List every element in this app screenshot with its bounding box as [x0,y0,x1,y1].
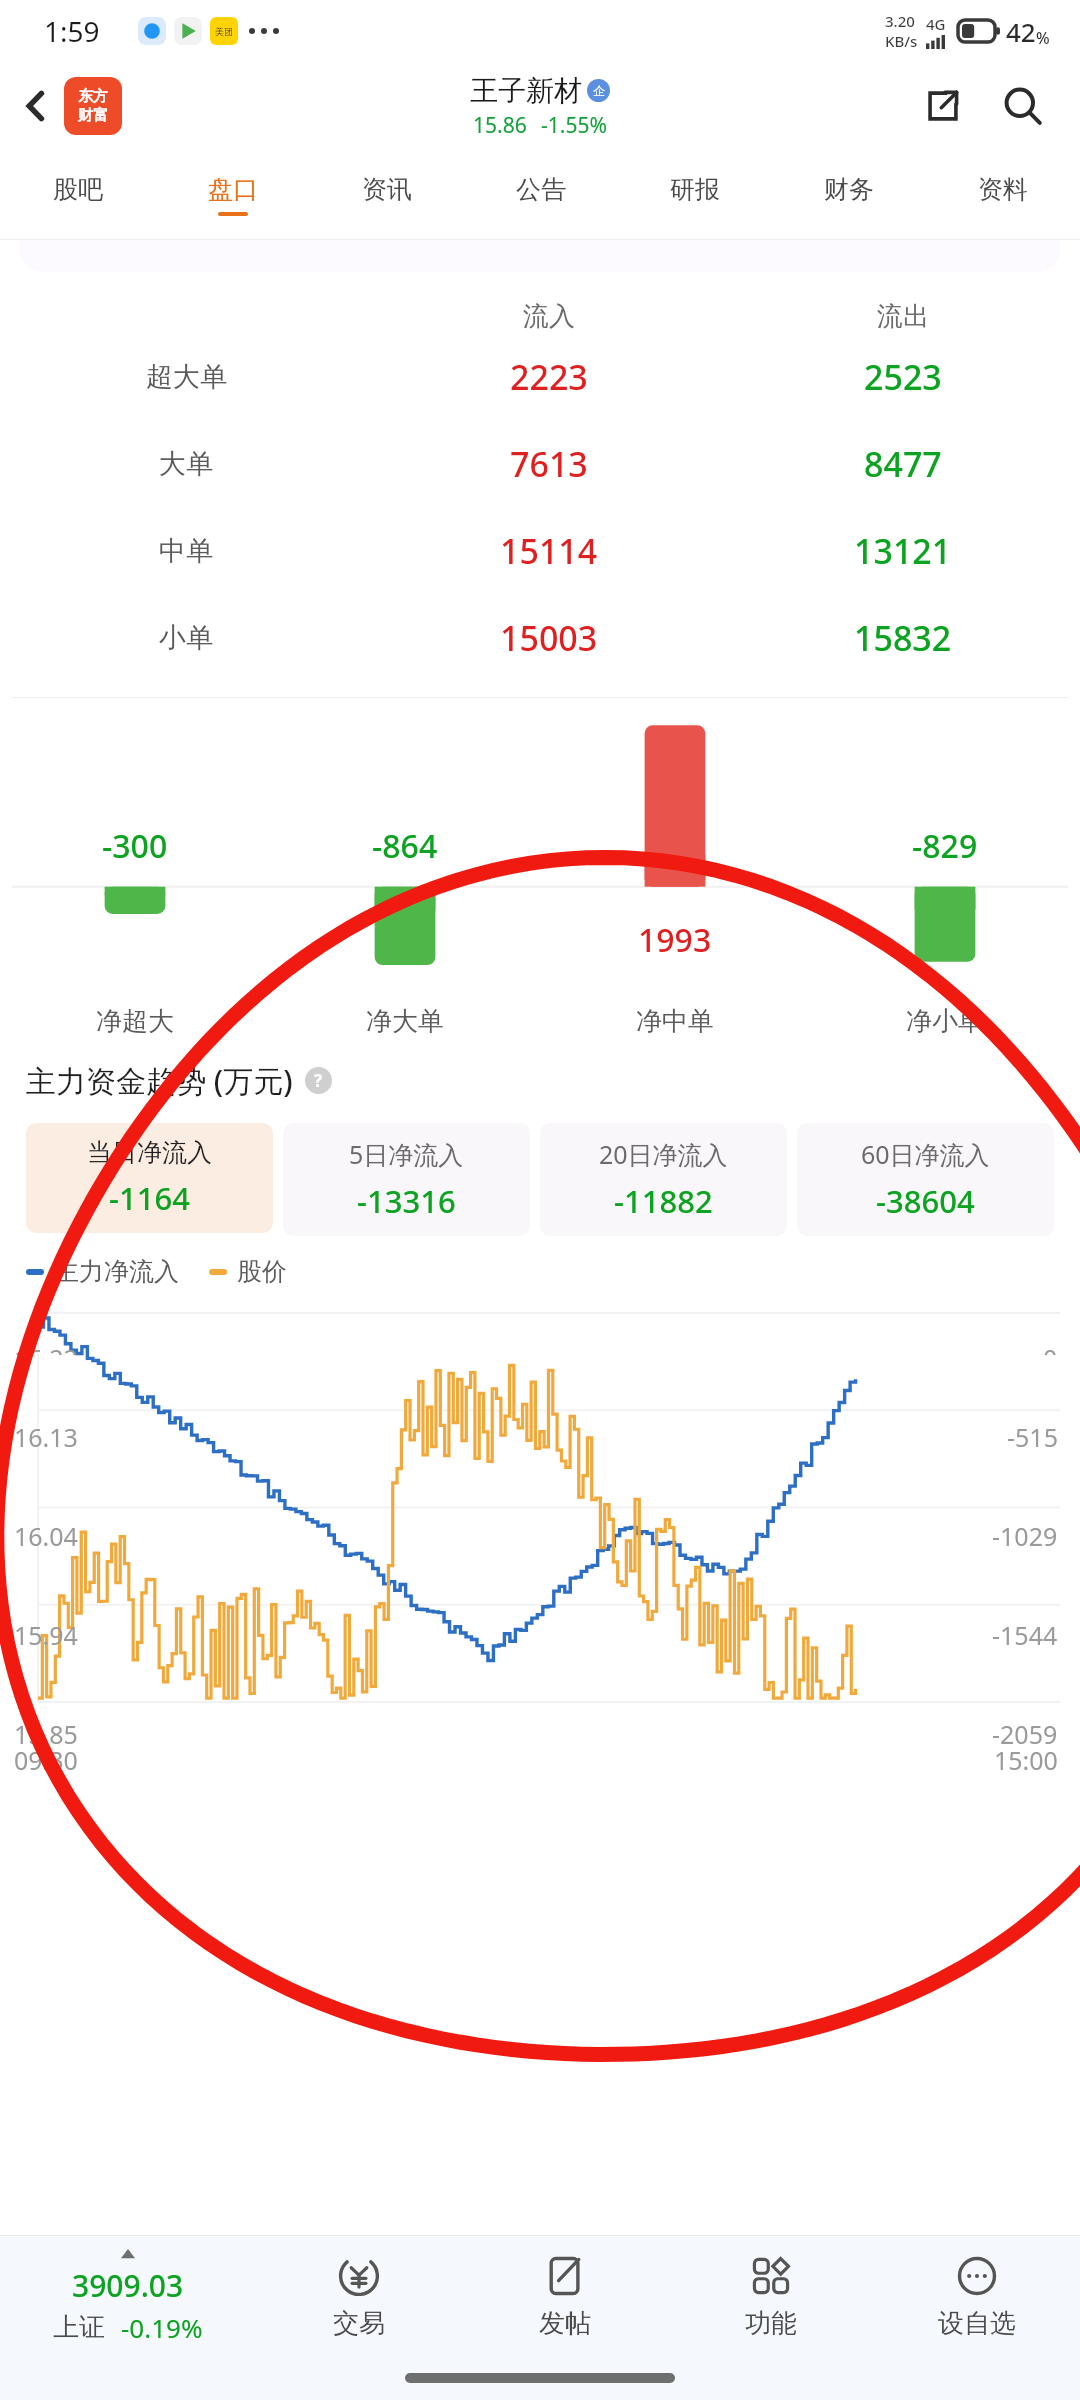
staticText: 资料 [978,174,1028,205]
staticText: -1029 [992,1519,1058,1553]
staticText: 研报 [670,174,720,205]
button[interactable]: 交易 [256,2236,462,2356]
staticText: 流入 [523,300,575,333]
staticText: 15.94 [14,1618,78,1652]
staticText: 净中单 [636,1005,714,1038]
staticText: -515 [1007,1420,1058,1454]
staticText: 净大单 [366,1005,444,1038]
button[interactable]: 发帖 [462,2236,668,2356]
staticText: 资讯 [362,174,412,205]
staticText: 主力净流入 [54,1256,179,1287]
staticText: 3.20 [885,11,915,31]
button[interactable]: 3909.03 [0,2236,256,2356]
button[interactable]: 当日净流入 [26,1123,273,1233]
staticText: -300 [102,824,168,868]
staticText: 15832 [854,615,952,661]
staticText: 1:59 [44,12,100,50]
button[interactable]: 20日净流入 [540,1123,787,1236]
staticText: 上证 [53,2311,105,2344]
staticText: 42 [1006,14,1036,49]
staticText: 财务 [824,174,874,205]
staticText: 发帖 [539,2307,591,2340]
staticText: 股价 [237,1256,287,1287]
button[interactable]: 股吧 [0,150,155,240]
staticText: 财富 [78,106,108,125]
staticText: -829 [912,824,978,868]
button[interactable]: 60日净流入 [797,1123,1054,1236]
staticText: 8477 [864,441,942,487]
staticText: 功能 [745,2307,797,2340]
button[interactable]: 功能 [668,2236,874,2356]
button[interactable]: 超大单 [0,333,1080,420]
staticText: 美团 [215,26,233,37]
button[interactable]: 大单 [0,420,1080,507]
staticText: 超大单 [146,360,227,394]
staticText: 交易 [333,2307,385,2340]
staticText: 盘口 [208,174,258,205]
staticText: -864 [372,824,438,868]
button[interactable]: 东方财富 [64,77,122,135]
staticText: 15003 [500,615,598,661]
staticText: KB/s [885,31,918,51]
staticText: 3909.03 [72,2265,184,2306]
staticText: 净小单 [906,1005,984,1038]
staticText: 中单 [159,534,213,568]
staticText: 流出 [877,300,929,333]
button[interactable]: 公告 [464,150,618,240]
button[interactable]: 资讯 [310,150,464,240]
staticText: 16.13 [14,1420,78,1454]
button[interactable]: 资料 [926,150,1080,240]
button[interactable]: 研报 [618,150,772,240]
staticText: 企 [593,83,605,98]
staticText: 股吧 [53,174,103,205]
button[interactable]: Back [8,78,64,134]
staticText: 16.04 [14,1519,78,1553]
button[interactable]: 财务 [772,150,926,240]
button[interactable]: 设自选 [874,2236,1080,2356]
staticText: 1993 [638,918,712,962]
staticText: -1164 [109,1177,190,1219]
staticText: 东方 [78,87,108,106]
staticText: 2223 [510,354,588,400]
staticText: 15:00 [994,1743,1058,1772]
staticText: 2523 [864,354,942,400]
button[interactable]: 中单 [0,507,1080,594]
staticText: 0 [1043,1341,1058,1355]
button[interactable]: 5日净流入 [283,1123,530,1236]
staticText: 公告 [516,174,566,205]
staticText: -38604 [876,1180,975,1222]
button[interactable]: Help [305,1067,332,1094]
staticText: -2059 [992,1717,1058,1751]
staticText: -11882 [614,1180,713,1222]
button[interactable]: 小单 [0,594,1080,681]
staticText: 15.85 [14,1717,78,1751]
staticText: 7613 [510,441,588,487]
staticText: 设自选 [938,2307,1016,2340]
staticText: 大单 [159,447,213,481]
staticText: -13316 [357,1180,456,1222]
staticText: 20日净流入 [599,1137,728,1171]
staticText: -1544 [992,1618,1058,1652]
staticText: 净超大 [96,1005,174,1038]
staticText: 13121 [854,528,952,574]
staticText: 16.22 [14,1341,78,1355]
staticText: 小单 [159,621,213,655]
staticText: % [1036,27,1050,49]
button[interactable]: 盘口 [155,150,310,240]
staticText: 主力资金趋势 (万元) [26,1060,293,1101]
staticText: -0.19% [121,2310,203,2345]
staticText: 60日净流入 [861,1137,990,1171]
staticText: 当日净流入 [87,1137,212,1168]
staticText: -1.55% [541,111,607,140]
staticText: 15114 [500,528,598,574]
staticText: 王子新材 [470,73,582,108]
button[interactable]: Share [914,77,972,135]
button[interactable]: Search [990,73,1056,139]
staticText: 15.86 [473,111,527,140]
staticText: 09:30 [14,1743,78,1772]
staticText: 4G [926,14,946,34]
staticText: ? [314,1069,323,1092]
staticText: 5日净流入 [349,1137,464,1171]
